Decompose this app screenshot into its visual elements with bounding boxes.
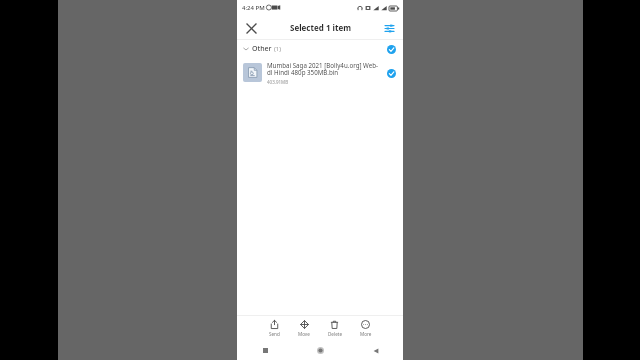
- button[interactable]: Delete: [319, 316, 350, 341]
- button[interactable]: Move: [289, 316, 319, 341]
- staticText: Mumbai Saga 2021 [Bolly4u.org] Web-dl Hi…: [267, 61, 380, 77]
- button[interactable]: Back: [348, 341, 403, 360]
- staticText: Move: [298, 331, 310, 337]
- staticText: Other: [252, 44, 272, 54]
- staticText: Send: [269, 331, 280, 337]
- staticText: More: [360, 331, 372, 337]
- button[interactable]: Deselect group: [384, 42, 398, 56]
- button[interactable]: Deselect file: [384, 66, 398, 80]
- staticText: Selected 1 item: [290, 22, 351, 33]
- button[interactable]: Close selection: [241, 18, 261, 38]
- button[interactable]: Mumbai Saga 2021 [Bolly4u.org] Web-dl Hi…: [237, 57, 403, 88]
- button[interactable]: Sort options: [379, 18, 399, 38]
- staticText: Delete: [328, 331, 342, 337]
- button[interactable]: Recents: [237, 341, 293, 360]
- staticText: 403.91MB: [267, 79, 289, 85]
- button[interactable]: Other: [237, 40, 403, 57]
- button[interactable]: More: [350, 316, 381, 341]
- button[interactable]: Send: [259, 316, 289, 341]
- staticText: 4:24 PM: [242, 4, 265, 12]
- staticText: (1): [274, 45, 282, 53]
- button[interactable]: Home: [293, 341, 348, 360]
